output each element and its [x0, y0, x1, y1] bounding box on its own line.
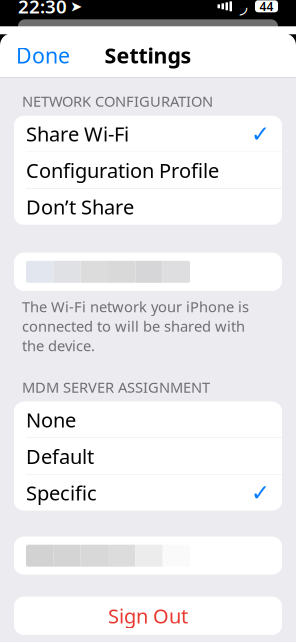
button[interactable]: Done [0, 33, 86, 77]
staticText: ➤ [70, 0, 82, 15]
button[interactable]: Don’t Share [14, 189, 282, 225]
staticText: The Wi-Fi network your iPhone is connect… [22, 297, 249, 355]
staticText: Done [16, 41, 70, 69]
staticText: Share Wi-Fi [26, 120, 129, 147]
staticText: Specific [26, 479, 97, 506]
staticText: Sign Out [108, 602, 188, 629]
staticText: 44 [259, 0, 273, 14]
staticText: Configuration Profile [26, 157, 219, 184]
staticText: Default [26, 443, 94, 469]
staticText: None [26, 406, 76, 433]
button[interactable]: Specific [14, 475, 282, 511]
button[interactable]: None [14, 402, 282, 438]
staticText: ✓ [251, 121, 270, 147]
button[interactable]: Sign Out [14, 597, 282, 635]
staticText: NETWORK CONFIGURATION [22, 91, 213, 111]
button[interactable]: Default [14, 438, 282, 474]
staticText: ◞ [239, 0, 247, 18]
staticText: Settings [104, 41, 191, 69]
staticText: 22:30 [18, 0, 67, 19]
staticText: ✓ [251, 480, 270, 505]
button[interactable]: Share Wi-Fi [14, 116, 282, 152]
button[interactable]: Configuration Profile [14, 152, 282, 188]
staticText: Don’t Share [26, 193, 134, 220]
staticText: MDM SERVER ASSIGNMENT [22, 377, 210, 397]
